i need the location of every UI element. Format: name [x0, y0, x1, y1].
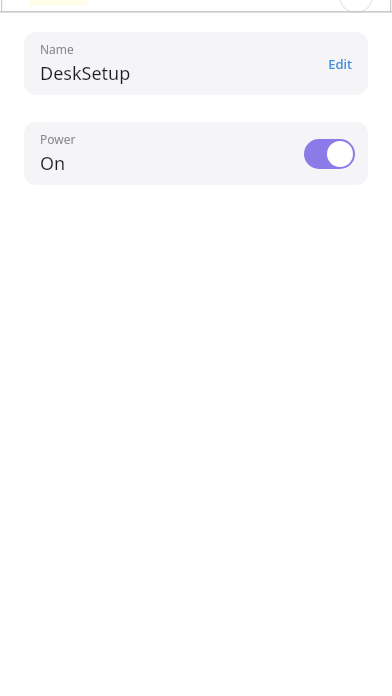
- button[interactable]: Name: [24, 32, 368, 95]
- staticText: Power: [40, 131, 76, 147]
- staticText: On: [40, 151, 66, 176]
- button[interactable]: Edit: [312, 45, 368, 83]
- staticText: Edit: [328, 55, 352, 73]
- staticText: DeskSetup: [40, 61, 131, 86]
- button[interactable]: Power: [24, 122, 368, 185]
- staticText: Name: [40, 41, 74, 57]
- button[interactable]: Power toggle, on: [304, 139, 355, 169]
